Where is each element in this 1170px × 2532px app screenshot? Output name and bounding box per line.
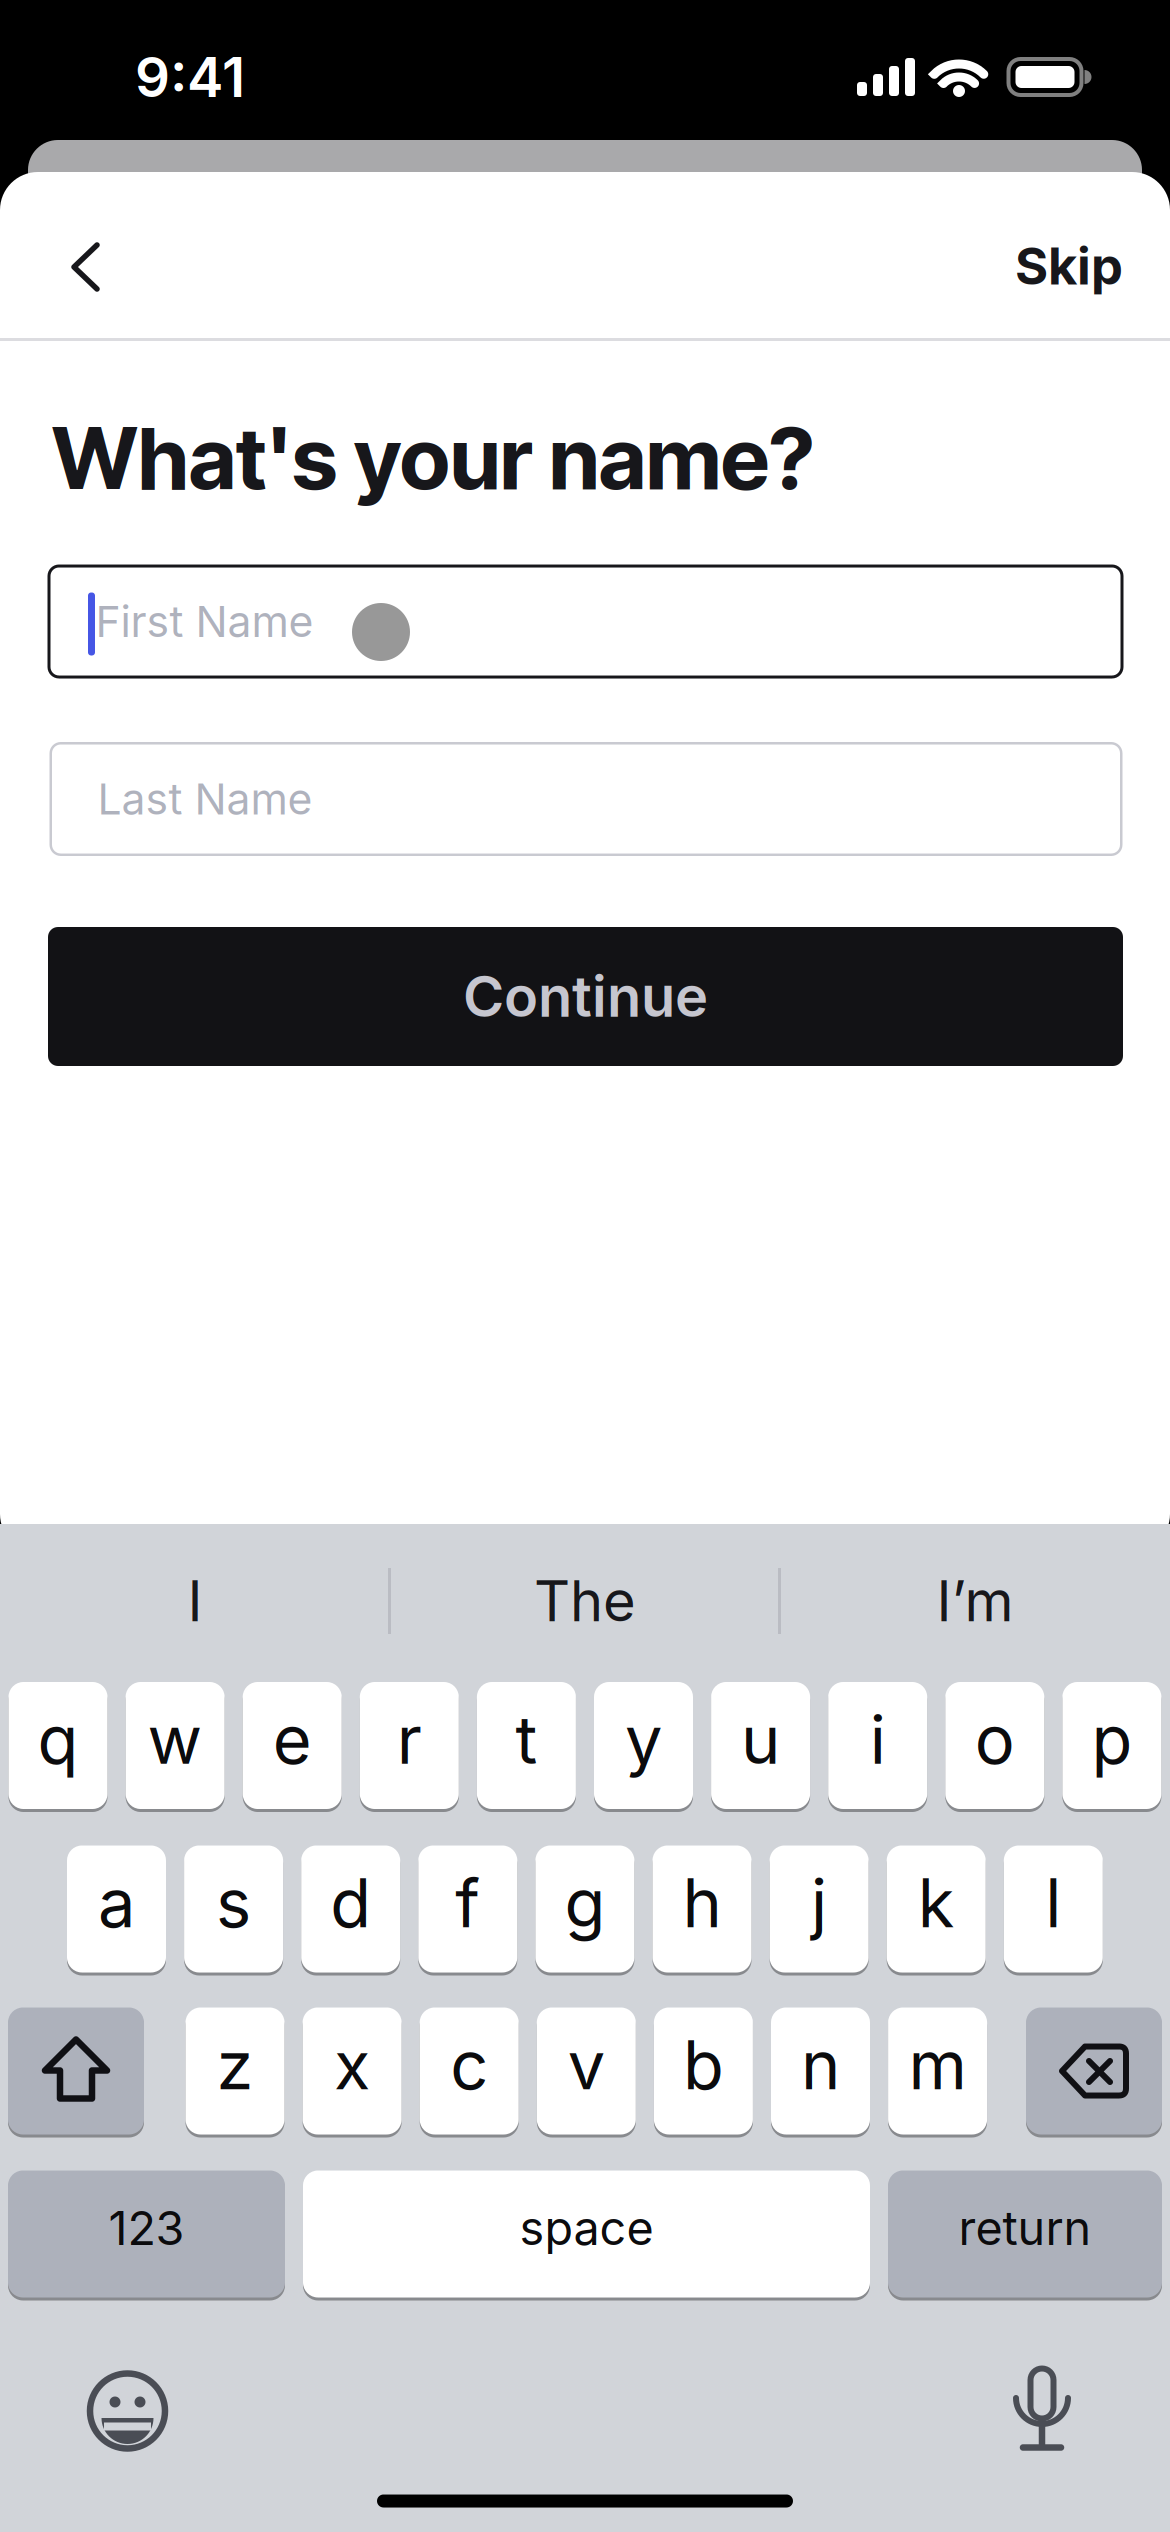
button[interactable]: p <box>1062 1682 1161 1809</box>
button[interactable]: u <box>711 1682 810 1809</box>
staticText: w <box>148 1700 203 1779</box>
button[interactable]: return <box>888 2170 1162 2297</box>
button[interactable]: First Name <box>47 564 1123 678</box>
staticText: y <box>625 1700 662 1779</box>
staticText: i <box>870 1700 886 1779</box>
staticText: a <box>98 1864 135 1942</box>
staticText: b <box>683 2026 724 2104</box>
staticText: r <box>397 1700 422 1779</box>
button[interactable]: I <box>5 1551 385 1651</box>
staticText: 123 <box>108 2200 184 2256</box>
button[interactable]: d <box>301 1845 400 1972</box>
button[interactable]: o <box>945 1682 1044 1809</box>
button[interactable]: t <box>477 1682 576 1809</box>
button[interactable]: Dictate <box>992 2358 1092 2458</box>
button[interactable]: z <box>185 2007 284 2134</box>
button[interactable]: I’m <box>785 1551 1165 1651</box>
button[interactable]: Continue <box>48 927 1123 1066</box>
staticText: f <box>455 1864 480 1942</box>
staticText: p <box>1091 1700 1132 1779</box>
button[interactable]: q <box>8 1682 107 1809</box>
button[interactable]: space <box>303 2170 870 2297</box>
button[interactable]: m <box>888 2007 987 2134</box>
button[interactable]: h <box>652 1845 751 1972</box>
staticText: m <box>909 2026 967 2104</box>
staticText: o <box>975 1700 1015 1779</box>
staticText: g <box>564 1864 605 1942</box>
button[interactable]: Shift <box>8 2007 144 2134</box>
button[interactable]: c <box>420 2007 519 2134</box>
button[interactable]: b <box>654 2007 753 2134</box>
staticText: q <box>37 1700 78 1779</box>
button[interactable]: v <box>537 2007 636 2134</box>
button[interactable]: Emoji <box>77 2361 177 2461</box>
button[interactable]: k <box>887 1845 986 1972</box>
staticText: k <box>918 1864 955 1942</box>
staticText: d <box>330 1864 371 1942</box>
button[interactable]: 123 <box>8 2170 285 2297</box>
button[interactable]: s <box>184 1845 283 1972</box>
staticText: s <box>216 1864 251 1942</box>
staticText: c <box>450 2026 488 2104</box>
staticText: l <box>1045 1864 1061 1942</box>
button[interactable]: f <box>418 1845 517 1972</box>
button[interactable]: Skip <box>1015 236 1123 296</box>
button[interactable]: w <box>126 1682 225 1809</box>
button[interactable]: The <box>395 1551 775 1651</box>
button[interactable]: i <box>828 1682 927 1809</box>
staticText: I’m <box>936 1568 1013 1634</box>
staticText: t <box>515 1700 537 1779</box>
staticText: return <box>958 2200 1091 2256</box>
staticText: I <box>187 1568 202 1634</box>
button[interactable]: y <box>594 1682 693 1809</box>
button[interactable]: Back <box>53 235 117 299</box>
button[interactable]: Last Name <box>49 742 1122 856</box>
staticText: x <box>334 2026 370 2104</box>
staticText: Skip <box>1015 236 1123 296</box>
staticText: v <box>568 2026 605 2104</box>
staticText: First Name <box>95 596 313 647</box>
button[interactable]: e <box>243 1682 342 1809</box>
staticText: j <box>811 1864 827 1942</box>
button[interactable]: x <box>303 2007 402 2134</box>
staticText: Continue <box>463 963 708 1030</box>
staticText: u <box>741 1700 780 1779</box>
staticText: Last Name <box>97 774 312 824</box>
staticText: e <box>273 1700 312 1779</box>
staticText: z <box>216 2026 253 2104</box>
button[interactable]: r <box>360 1682 459 1809</box>
staticText: h <box>682 1864 721 1942</box>
staticText: n <box>801 2026 840 2104</box>
button[interactable]: g <box>535 1845 634 1972</box>
staticText: 9:41 <box>135 45 245 109</box>
staticText: space <box>519 2200 653 2256</box>
button[interactable]: n <box>771 2007 870 2134</box>
staticText: What's your name? <box>52 406 814 510</box>
staticText: The <box>534 1568 636 1634</box>
button[interactable]: j <box>770 1845 869 1972</box>
button[interactable]: Delete <box>1026 2007 1162 2134</box>
button[interactable]: a <box>67 1845 166 1972</box>
button[interactable]: l <box>1004 1845 1103 1972</box>
